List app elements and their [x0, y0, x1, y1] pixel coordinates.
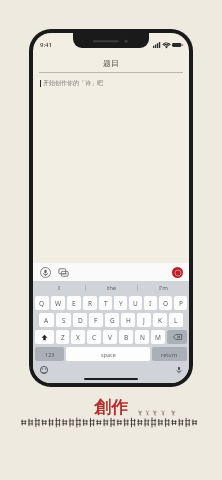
button[interactable]: D	[73, 313, 87, 327]
button[interactable]: Voice input	[39, 266, 52, 279]
button[interactable]: R	[83, 296, 97, 310]
staticText: J	[143, 316, 145, 325]
staticText: 题目	[103, 58, 119, 68]
button[interactable]: K	[153, 313, 167, 327]
staticText: B	[124, 333, 129, 342]
staticText: P	[179, 299, 183, 308]
staticText: W	[55, 299, 62, 308]
staticText: N	[140, 333, 145, 342]
staticText: T	[104, 299, 108, 308]
staticText: C	[92, 333, 97, 342]
button[interactable]	[167, 330, 187, 344]
button[interactable]: Y	[114, 296, 127, 310]
button[interactable]: return	[152, 347, 187, 361]
button[interactable]	[35, 330, 54, 344]
button[interactable]: C	[87, 330, 101, 344]
staticText: U	[133, 299, 138, 308]
staticText: I	[58, 284, 61, 292]
button[interactable]: O	[159, 296, 172, 310]
staticText: S	[62, 316, 66, 325]
staticText: M	[155, 333, 161, 342]
staticText: 开始创作你的「诗」吧	[43, 79, 103, 87]
staticText: H	[126, 316, 131, 325]
staticText: E	[72, 299, 76, 308]
button[interactable]: X	[71, 330, 85, 344]
staticText: L	[174, 316, 178, 325]
staticText: the	[107, 284, 117, 292]
button[interactable]: B	[119, 330, 133, 344]
staticText: Z	[61, 333, 65, 342]
staticText: F	[94, 316, 98, 325]
button[interactable]: E	[67, 296, 81, 310]
button[interactable]: N	[135, 330, 149, 344]
button[interactable]: Z	[56, 330, 69, 344]
button[interactable]: G	[105, 313, 119, 327]
button[interactable]: Emoji	[38, 364, 49, 375]
staticText: O	[163, 299, 169, 308]
button[interactable]: I	[33, 281, 85, 294]
staticText: G	[110, 316, 115, 325]
button[interactable]: 123	[35, 347, 64, 361]
staticText: D	[78, 316, 83, 325]
button[interactable]: U	[129, 296, 142, 310]
button[interactable]: T	[99, 296, 112, 310]
button[interactable]: Dictation	[173, 364, 184, 375]
button[interactable]: the	[86, 281, 137, 294]
staticText: R	[88, 299, 93, 308]
button[interactable]: W	[51, 296, 65, 310]
button[interactable]: M	[151, 330, 165, 344]
button[interactable]: J	[137, 313, 151, 327]
button[interactable]: space	[66, 347, 150, 361]
staticText: 創作	[94, 397, 128, 418]
staticText: 123	[45, 351, 55, 358]
button[interactable]: Send	[172, 267, 183, 278]
staticText: K	[158, 316, 163, 325]
staticText: return	[161, 351, 178, 358]
button[interactable]: I	[144, 296, 157, 310]
button[interactable]: H	[121, 313, 135, 327]
staticText: space	[101, 351, 116, 358]
button[interactable]: A	[39, 313, 54, 327]
staticText: I'm	[159, 284, 168, 292]
button[interactable]: I'm	[138, 281, 189, 294]
button[interactable]: F	[89, 313, 103, 327]
staticText: 9:41	[40, 41, 52, 49]
button[interactable]: S	[56, 313, 71, 327]
button[interactable]: V	[103, 330, 117, 344]
staticText: X	[76, 333, 80, 342]
staticText: A	[44, 316, 49, 325]
staticText: Y	[119, 299, 123, 308]
staticText: Q	[39, 299, 45, 308]
button[interactable]: Q	[35, 296, 49, 310]
button[interactable]: Switch keyboard	[57, 266, 70, 279]
staticText: I	[149, 299, 152, 308]
staticText: V	[108, 333, 112, 342]
button[interactable]: L	[169, 313, 183, 327]
button[interactable]: P	[174, 296, 187, 310]
